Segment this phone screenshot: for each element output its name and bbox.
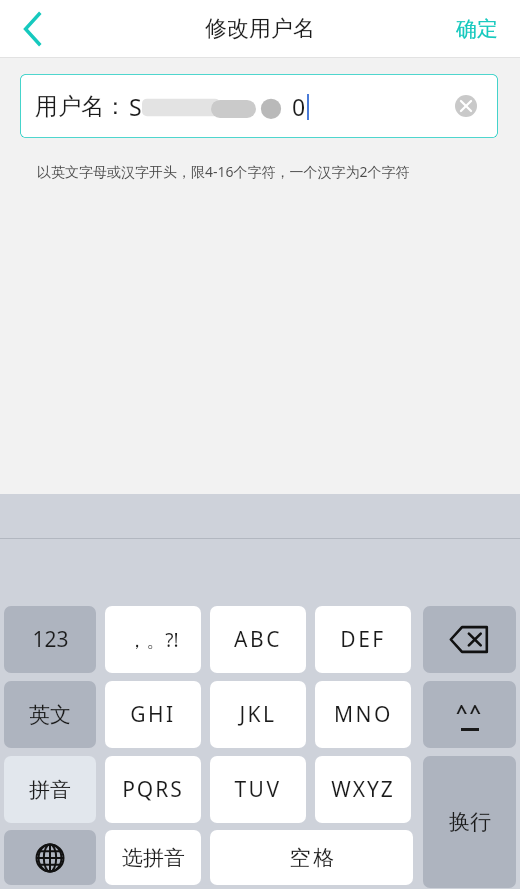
button[interactable]: TUV [210, 756, 306, 823]
button[interactable]: GHI [105, 681, 201, 748]
staticText: 选拼音 [122, 845, 185, 871]
staticText: JKL [239, 700, 277, 729]
button[interactable]: MNO [315, 681, 411, 748]
button[interactable]: ，。?! [105, 606, 201, 673]
staticText: 英文 [29, 702, 71, 728]
staticText: 换行 [449, 809, 491, 835]
staticText: ，。?! [127, 627, 179, 653]
button[interactable]: 空格 [210, 830, 413, 885]
button[interactable]: JKL [210, 681, 306, 748]
staticText: MNO [334, 700, 393, 729]
button[interactable]: 拼音 [4, 756, 96, 823]
button[interactable]: 123 [4, 606, 96, 673]
staticText: 用户名： [35, 92, 127, 121]
staticText: 以英文字母或汉字开头，限4-16个字符，一个汉字为2个字符 [37, 162, 410, 181]
staticText: S [129, 91, 142, 122]
staticText: 确定 [456, 16, 498, 42]
button[interactable]: DEF [315, 606, 411, 673]
staticText: ABC [234, 625, 282, 654]
staticText: GHI [130, 700, 176, 729]
button[interactable]: Emoticon [423, 681, 516, 748]
button[interactable]: PQRS [105, 756, 201, 823]
button[interactable]: 换行 [423, 756, 516, 888]
button[interactable]: 用户名： [20, 74, 498, 138]
button[interactable]: Back [6, 0, 60, 57]
staticText: PQRS [122, 775, 184, 804]
button[interactable]: 确定 [434, 0, 520, 57]
button[interactable]: ABC [210, 606, 306, 673]
button[interactable]: 选拼音 [105, 830, 201, 885]
staticText: WXYZ [331, 775, 395, 804]
staticText: DEF [340, 625, 386, 654]
button[interactable]: Backspace [423, 606, 516, 673]
button[interactable]: WXYZ [315, 756, 411, 823]
button[interactable]: 英文 [4, 681, 96, 748]
staticText: 修改用户名 [205, 15, 315, 43]
button[interactable]: Switch input method [4, 830, 96, 885]
staticText: 拼音 [29, 777, 71, 803]
button[interactable]: Clear text [446, 86, 486, 126]
staticText: TUV [234, 775, 282, 804]
staticText: 0 [292, 91, 306, 122]
staticText: ^^ [456, 698, 483, 725]
staticText: 123 [32, 625, 69, 654]
staticText: 空格 [288, 845, 336, 871]
